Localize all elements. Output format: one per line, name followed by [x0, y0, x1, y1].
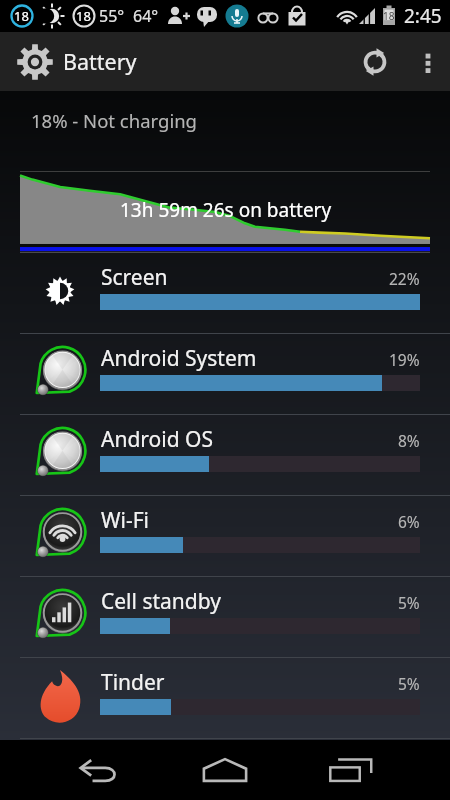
staticText: 18	[14, 7, 29, 25]
staticText: 64°	[133, 5, 159, 27]
staticText: 22%	[389, 268, 420, 289]
staticText: 18	[383, 9, 395, 23]
button[interactable]: Refresh	[344, 32, 406, 91]
button[interactable]: Back	[38, 740, 162, 800]
staticText: 5%	[398, 592, 420, 613]
staticText: 18% - Not charging	[31, 108, 197, 133]
button[interactable]: Android System	[0, 334, 450, 415]
staticText: 2:45	[404, 3, 442, 29]
staticText: Cell standby	[101, 587, 221, 616]
button[interactable]: Android OS	[0, 415, 450, 496]
staticText: 5%	[398, 673, 420, 694]
staticText: 8%	[398, 430, 420, 451]
button[interactable]: Home	[163, 740, 287, 800]
staticText: Tinder	[101, 668, 165, 697]
button[interactable]: More options	[406, 32, 450, 91]
staticText: 19%	[389, 349, 420, 370]
staticText: Android OS	[101, 425, 213, 454]
staticText: 18	[76, 7, 91, 25]
button[interactable]: Tinder	[0, 658, 450, 739]
button[interactable]: Cell standby	[0, 577, 450, 658]
button[interactable]: Screen	[0, 253, 450, 334]
staticText: Battery	[63, 47, 137, 76]
button[interactable]: Recents	[289, 740, 413, 800]
staticText: Screen	[101, 263, 168, 292]
staticText: Android System	[101, 344, 257, 373]
button[interactable]: Wi-Fi	[0, 496, 450, 577]
staticText: Wi-Fi	[101, 506, 150, 535]
staticText: 6%	[398, 511, 420, 532]
staticText: 13h 59m 26s on battery	[120, 197, 332, 223]
staticText: 55°	[99, 5, 125, 27]
